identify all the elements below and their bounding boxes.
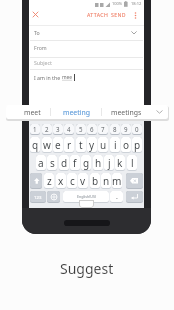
staticText: r — [67, 138, 72, 152]
staticText: 18:12 — [131, 1, 142, 6]
button[interactable]: e — [53, 137, 63, 153]
button[interactable]: j — [104, 155, 114, 171]
button[interactable]: t — [76, 137, 86, 153]
button[interactable]: o — [121, 137, 131, 153]
staticText: ATTACH — [87, 11, 109, 18]
button[interactable]: h — [93, 155, 103, 171]
staticText: t — [79, 138, 83, 152]
button[interactable]: meet — [14, 105, 50, 119]
staticText: 0 — [135, 125, 139, 133]
button[interactable]: q — [30, 137, 40, 153]
staticText: mee — [62, 74, 73, 81]
staticText: Subject — [34, 59, 52, 66]
staticText: k — [117, 156, 123, 170]
button[interactable]: r — [64, 137, 74, 153]
button[interactable]: s — [47, 155, 57, 171]
button[interactable]: ATTACH — [87, 8, 109, 20]
staticText: s — [50, 156, 55, 170]
button[interactable]: m — [112, 173, 122, 189]
button[interactable] — [29, 9, 144, 24]
staticText: d — [61, 156, 68, 170]
button[interactable]: 3 — [53, 124, 63, 135]
staticText: meet — [24, 108, 41, 117]
button[interactable]: p — [132, 137, 142, 153]
button[interactable]: n — [101, 173, 111, 189]
staticText: h — [95, 156, 102, 170]
staticText: Suggest — [60, 259, 114, 278]
button[interactable]: c — [67, 173, 77, 189]
button[interactable] — [134, 12, 137, 19]
button[interactable]: l — [127, 155, 137, 171]
button[interactable]: k — [115, 155, 125, 171]
staticText: l — [131, 156, 134, 170]
button[interactable]: 9 — [121, 124, 131, 135]
staticText: 6 — [90, 125, 94, 133]
button[interactable] — [29, 26, 144, 40]
button[interactable]: SEND — [110, 8, 127, 20]
button[interactable] — [150, 105, 168, 119]
staticText: e — [55, 138, 61, 152]
staticText: o — [123, 138, 130, 152]
button[interactable]: 0 — [132, 124, 142, 135]
button[interactable]: . — [110, 191, 123, 203]
button[interactable] — [29, 58, 144, 69]
staticText: meeting — [63, 108, 90, 117]
staticText: 3 — [56, 125, 60, 133]
staticText: I am in the — [34, 74, 62, 81]
button[interactable]: English(US) — [63, 191, 109, 203]
staticText: i — [114, 138, 117, 152]
button[interactable]: y — [87, 137, 97, 153]
staticText: From — [34, 44, 47, 51]
button[interactable] — [29, 41, 144, 57]
button[interactable]: 123 — [30, 191, 46, 203]
staticText: w — [43, 138, 51, 152]
button[interactable]: x — [56, 173, 66, 189]
button[interactable]: b — [90, 173, 100, 189]
button[interactable]: 5 — [76, 124, 86, 135]
button[interactable]: d — [59, 155, 69, 171]
staticText: z — [47, 174, 52, 188]
staticText: c — [70, 174, 75, 188]
button[interactable]: u — [98, 137, 108, 153]
staticText: 4 — [67, 125, 71, 133]
staticText: 100% — [112, 1, 123, 6]
button[interactable]: 7 — [98, 124, 108, 135]
button[interactable]: 4 — [64, 124, 74, 135]
button[interactable]: z — [44, 173, 54, 189]
staticText: v — [80, 174, 86, 188]
button[interactable]: f — [70, 155, 80, 171]
button[interactable]: meeting — [51, 105, 101, 119]
button[interactable]: i — [110, 137, 120, 153]
staticText: f — [73, 156, 77, 170]
button[interactable]: g — [81, 155, 91, 171]
button[interactable]: 1 — [30, 124, 40, 135]
button[interactable]: 2 — [42, 124, 52, 135]
staticText: 9 — [124, 125, 128, 133]
staticText: p — [134, 138, 141, 152]
staticText: 7 — [101, 125, 105, 133]
staticText: meetings — [111, 108, 142, 117]
staticText: SEND — [111, 11, 127, 18]
button[interactable] — [47, 191, 60, 203]
staticText: u — [100, 138, 107, 152]
button[interactable] — [126, 191, 143, 203]
button[interactable]: v — [78, 173, 88, 189]
staticText: 5 — [79, 125, 83, 133]
staticText: j — [108, 156, 111, 170]
button[interactable] — [33, 12, 38, 17]
button[interactable]: w — [42, 137, 52, 153]
staticText: 8 — [113, 125, 117, 133]
staticText: 123 — [34, 194, 42, 200]
button[interactable]: I am in the — [34, 74, 75, 81]
button[interactable]: 8 — [110, 124, 120, 135]
button[interactable]: a — [36, 155, 46, 171]
staticText: a — [38, 156, 44, 170]
staticText: m — [112, 174, 122, 188]
button[interactable] — [30, 173, 42, 189]
staticText: n — [103, 174, 110, 188]
button[interactable]: meetings — [102, 105, 150, 119]
staticText: . — [116, 192, 118, 202]
button[interactable]: 6 — [87, 124, 97, 135]
button[interactable] — [126, 173, 143, 189]
staticText: g — [83, 156, 90, 170]
